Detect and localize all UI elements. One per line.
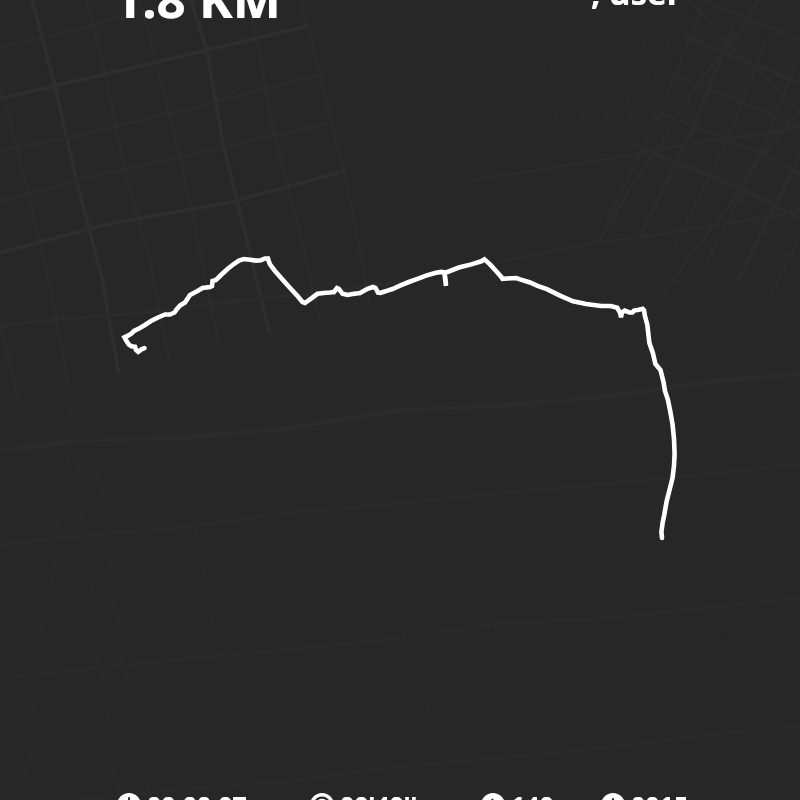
- staticText: 0015: [631, 788, 689, 800]
- staticText: 140: [511, 788, 554, 800]
- button[interactable]: Calories: [601, 788, 689, 800]
- button[interactable]: Duration: [117, 788, 247, 800]
- button[interactable]: Heart rate: [481, 788, 554, 800]
- staticText: 00:00:07: [147, 788, 247, 800]
- button[interactable]: Pace: [310, 788, 418, 800]
- staticText: , user: [591, 0, 682, 15]
- staticText: 1.8 KM: [113, 0, 281, 32]
- staticText: 00'40'': [340, 788, 418, 800]
